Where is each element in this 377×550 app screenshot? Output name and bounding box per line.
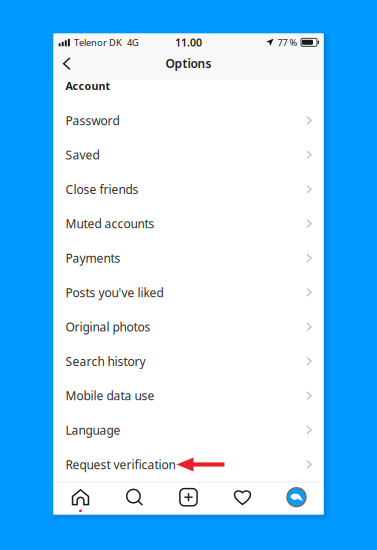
staticText: Muted accounts	[65, 216, 154, 232]
staticText: Account	[65, 79, 110, 93]
staticText: Search history	[65, 353, 145, 369]
button[interactable]: Home	[53, 482, 107, 515]
staticText: Posts you've liked	[65, 284, 163, 300]
staticText: Payments	[65, 250, 120, 266]
staticText: 77 %	[277, 36, 297, 48]
button[interactable]: Payments	[53, 241, 323, 275]
button[interactable]: Original photos	[53, 310, 323, 344]
button[interactable]: Close friends	[53, 172, 323, 206]
button[interactable]: Password	[53, 103, 323, 138]
staticText: Options	[165, 55, 211, 71]
button[interactable]: Activity	[215, 482, 269, 515]
staticText: 11.00	[175, 35, 202, 49]
staticText: Telenor DK	[74, 36, 122, 48]
button[interactable]: Muted accounts	[53, 206, 323, 241]
button[interactable]: Posts you've liked	[53, 275, 323, 310]
button[interactable]: Profile	[269, 482, 323, 515]
staticText: 4G	[127, 36, 139, 48]
button[interactable]: Request verification	[53, 447, 323, 482]
button[interactable]: Search	[107, 482, 161, 515]
staticText: Password	[65, 112, 119, 128]
staticText: Request verification	[65, 456, 175, 472]
staticText: Close friends	[65, 181, 138, 197]
button[interactable]: Language	[53, 413, 323, 447]
button[interactable]: New post	[161, 482, 215, 515]
button[interactable]: Search history	[53, 344, 323, 378]
staticText: Mobile data use	[65, 388, 154, 404]
button[interactable]: Mobile data use	[53, 378, 323, 413]
staticText: Saved	[65, 147, 99, 163]
staticText: Original photos	[65, 319, 150, 335]
button[interactable]: Back	[53, 53, 85, 79]
staticText: Language	[65, 422, 120, 438]
button[interactable]: Saved	[53, 138, 323, 172]
